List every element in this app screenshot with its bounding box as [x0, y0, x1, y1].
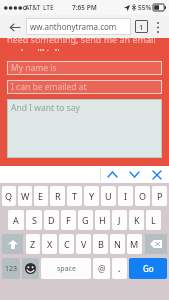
button[interactable]: ww.anthonytrama.com [26, 18, 131, 35]
button[interactable]: Z [26, 234, 40, 254]
button[interactable]: J [112, 210, 127, 230]
staticText: I can be emailed at [11, 81, 87, 93]
staticText: 1 [139, 22, 144, 32]
button[interactable]: Close keyboard [145, 166, 169, 183]
button[interactable]: S [26, 210, 42, 230]
button[interactable]: U [101, 186, 116, 206]
staticText: B [98, 238, 104, 250]
staticText: H [99, 214, 106, 226]
staticText: ww.anthonytrama.com [30, 21, 117, 32]
button[interactable]: Y [84, 186, 99, 206]
staticText: space [57, 264, 76, 274]
staticText: X [47, 238, 53, 250]
staticText: S [32, 214, 37, 226]
button[interactable]: Tabs [135, 20, 148, 33]
button[interactable]: I [118, 186, 133, 206]
button[interactable]: P [152, 186, 167, 206]
button[interactable]: H [95, 210, 110, 230]
staticText: L [151, 214, 156, 226]
staticText: need something, send me an email [7, 38, 156, 45]
staticText: G [82, 214, 89, 226]
button[interactable]: I can be emailed at [7, 80, 162, 94]
staticText: And I want to say [11, 102, 80, 114]
button[interactable]: R [50, 186, 65, 206]
staticText: . [118, 263, 121, 275]
staticText: A [13, 214, 19, 226]
button[interactable]: 123 [2, 258, 20, 279]
button[interactable]: . [112, 258, 127, 279]
button[interactable]: T [67, 186, 82, 206]
button[interactable]: G [78, 210, 93, 230]
button[interactable]: M [127, 234, 142, 254]
button[interactable]: Menu [152, 18, 164, 36]
staticText: My name is [11, 62, 57, 74]
button[interactable]: C [59, 234, 74, 254]
button[interactable]: space [41, 258, 91, 279]
button[interactable]: V [76, 234, 91, 254]
staticText: I [124, 190, 128, 202]
button[interactable]: @ [93, 258, 110, 279]
button[interactable]: Back [5, 18, 23, 36]
button[interactable]: O [135, 186, 150, 206]
button[interactable]: A [8, 210, 24, 230]
button[interactable]: W [18, 186, 32, 206]
button[interactable]: K [129, 210, 144, 230]
button[interactable]: D [44, 210, 59, 230]
button[interactable]: And I want to say [7, 99, 162, 158]
staticText: F [66, 214, 71, 226]
button[interactable]: Next field [123, 166, 145, 183]
button[interactable]: Backspace [145, 234, 167, 254]
button[interactable]: X [42, 234, 57, 254]
staticText: 123 [5, 264, 18, 274]
staticText: W [21, 190, 30, 202]
button[interactable]: N [110, 234, 125, 254]
staticText: C [64, 238, 70, 250]
staticText: 55% [138, 3, 152, 12]
staticText: P [157, 190, 163, 202]
button[interactable]: Previous field [101, 166, 123, 183]
button[interactable]: Emoji [22, 258, 39, 279]
staticText: M [130, 238, 139, 250]
staticText: @ [98, 263, 106, 275]
staticText: K [134, 214, 140, 226]
staticText: E [38, 190, 44, 202]
staticText: 7:65 PM [72, 3, 97, 12]
staticText: Y [89, 190, 95, 202]
button[interactable]: B [93, 234, 108, 254]
staticText: V [81, 238, 87, 250]
staticText: J [118, 214, 121, 226]
button[interactable]: Shift [2, 234, 23, 254]
staticText: Go [143, 263, 154, 274]
staticText: AT&T [25, 3, 41, 12]
staticText: D [48, 214, 55, 226]
staticText: T [72, 190, 78, 202]
staticText: Z [30, 238, 36, 250]
button[interactable]: My name is [7, 61, 162, 75]
staticText: LTE [43, 3, 54, 12]
staticText: N [114, 238, 121, 250]
staticText: R [55, 190, 61, 202]
button[interactable]: E [34, 186, 48, 206]
button[interactable]: L [146, 210, 161, 230]
button[interactable]: Go [129, 258, 167, 279]
staticText: and we'll talk. [7, 46, 65, 51]
button[interactable]: Q [2, 186, 16, 206]
staticText: O [139, 190, 147, 202]
button[interactable]: F [61, 210, 76, 230]
staticText: Q [5, 190, 13, 202]
staticText: U [105, 190, 112, 202]
